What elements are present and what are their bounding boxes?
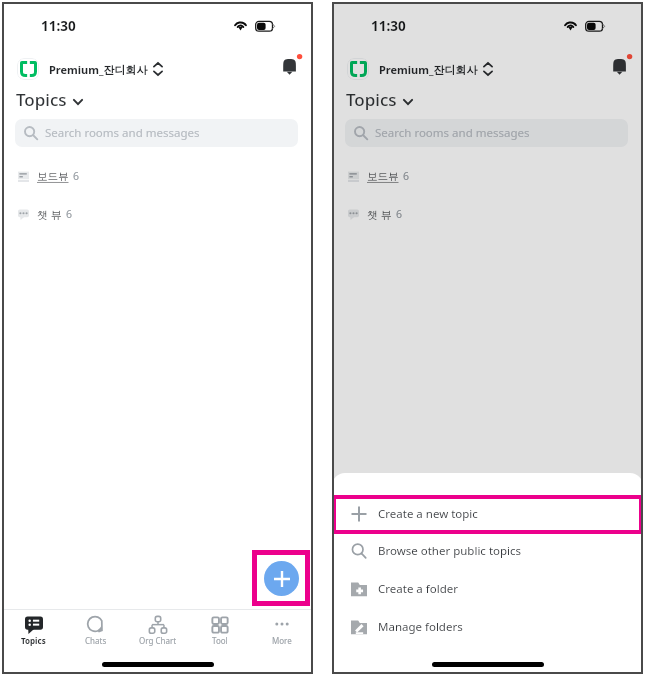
staticText: 보드뷰 <box>367 170 399 183</box>
staticText: More <box>272 635 292 646</box>
button[interactable]: Search rooms and messages <box>345 119 628 147</box>
staticText: 6 <box>73 169 80 183</box>
button[interactable]: 보드뷰 <box>2 157 313 195</box>
staticText: Premium_잔디회사 <box>379 62 478 77</box>
button[interactable]: 챗 뷰 <box>332 195 643 233</box>
button[interactable]: Manage folders <box>332 607 643 646</box>
button[interactable]: Topics <box>2 610 65 656</box>
staticText: Premium_잔디회사 <box>49 62 148 77</box>
button[interactable]: Premium_잔디회사 <box>17 55 163 83</box>
button[interactable]: Notifications <box>606 53 634 81</box>
button[interactable]: Search rooms and messages <box>15 119 298 147</box>
staticText: 6 <box>403 169 410 183</box>
staticText: Search rooms and messages <box>375 125 530 141</box>
button[interactable]: Org Chart <box>127 610 189 656</box>
staticText: Topics <box>346 88 397 111</box>
button[interactable]: Premium_잔디회사 <box>347 55 493 83</box>
button[interactable]: Create a new topic <box>332 494 643 533</box>
button[interactable]: More <box>251 610 313 656</box>
staticText: 6 <box>66 207 73 221</box>
button[interactable]: Topics <box>346 87 414 111</box>
button[interactable]: Create new <box>264 561 299 596</box>
staticText: Search rooms and messages <box>45 125 200 141</box>
staticText: Chats <box>85 635 107 646</box>
staticText: Create a new topic <box>378 506 478 522</box>
staticText: 11:30 <box>41 17 76 35</box>
staticText: Org Chart <box>139 635 177 646</box>
button[interactable]: Chats <box>65 610 127 656</box>
staticText: Topics <box>16 88 67 111</box>
button[interactable]: 챗 뷰 <box>2 195 313 233</box>
staticText: 챗 뷰 <box>367 207 392 222</box>
button[interactable]: Tool <box>189 610 251 656</box>
button[interactable]: Notifications <box>276 53 304 81</box>
button[interactable]: Topics <box>16 87 84 111</box>
staticText: Manage folders <box>378 619 463 635</box>
staticText: 보드뷰 <box>37 170 69 183</box>
button[interactable]: Browse other public topics <box>332 531 643 570</box>
button[interactable]: 보드뷰 <box>332 157 643 195</box>
staticText: Topics <box>21 635 46 646</box>
staticText: 챗 뷰 <box>37 207 62 222</box>
staticText: Browse other public topics <box>378 543 522 559</box>
staticText: Create a folder <box>378 581 458 597</box>
staticText: 6 <box>396 207 403 221</box>
button[interactable]: Create a folder <box>332 569 643 608</box>
staticText: Tool <box>212 635 228 646</box>
staticText: 11:30 <box>371 17 406 35</box>
